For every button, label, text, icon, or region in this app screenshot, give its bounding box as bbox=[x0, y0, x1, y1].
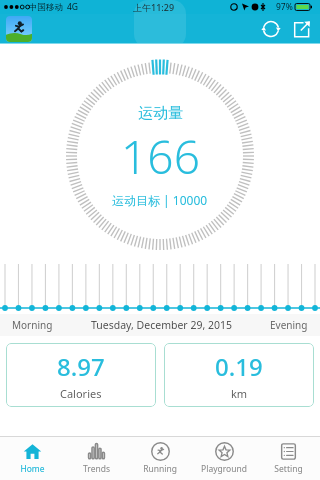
staticText: 运动量 bbox=[138, 104, 183, 123]
staticText: 4G bbox=[67, 1, 79, 13]
staticText: 运动目标 | 10000 bbox=[112, 192, 208, 208]
button[interactable]: Running bbox=[128, 437, 192, 480]
staticText: Running bbox=[143, 463, 177, 475]
staticText: km bbox=[231, 386, 248, 401]
staticText: 上午11:29 bbox=[133, 1, 175, 13]
staticText: 97% bbox=[276, 1, 293, 13]
staticText: Setting bbox=[274, 463, 303, 475]
button[interactable]: 8.97 bbox=[6, 343, 156, 407]
staticText: Calories bbox=[60, 386, 102, 401]
button[interactable]: Share bbox=[288, 16, 314, 42]
staticText: Playground bbox=[201, 463, 247, 475]
button[interactable]: Trends bbox=[64, 437, 128, 480]
staticText: 中国移动 bbox=[29, 2, 63, 13]
button[interactable]: 0.19 bbox=[164, 343, 314, 407]
button[interactable]: Refresh bbox=[258, 16, 284, 42]
button[interactable]: App icon bbox=[6, 16, 32, 42]
staticText: Tuesday, December 29, 2015 bbox=[91, 318, 232, 332]
staticText: Morning bbox=[12, 318, 53, 332]
staticText: 166 bbox=[121, 125, 200, 188]
staticText: 8.97 bbox=[57, 350, 105, 383]
button[interactable]: Setting bbox=[256, 437, 320, 480]
staticText: Evening bbox=[270, 318, 308, 332]
staticText: Trends bbox=[83, 463, 110, 475]
button[interactable]: Playground bbox=[192, 437, 256, 480]
button[interactable]: Home bbox=[0, 437, 64, 480]
staticText: Home bbox=[20, 463, 45, 475]
staticText: 0.19 bbox=[215, 350, 263, 383]
